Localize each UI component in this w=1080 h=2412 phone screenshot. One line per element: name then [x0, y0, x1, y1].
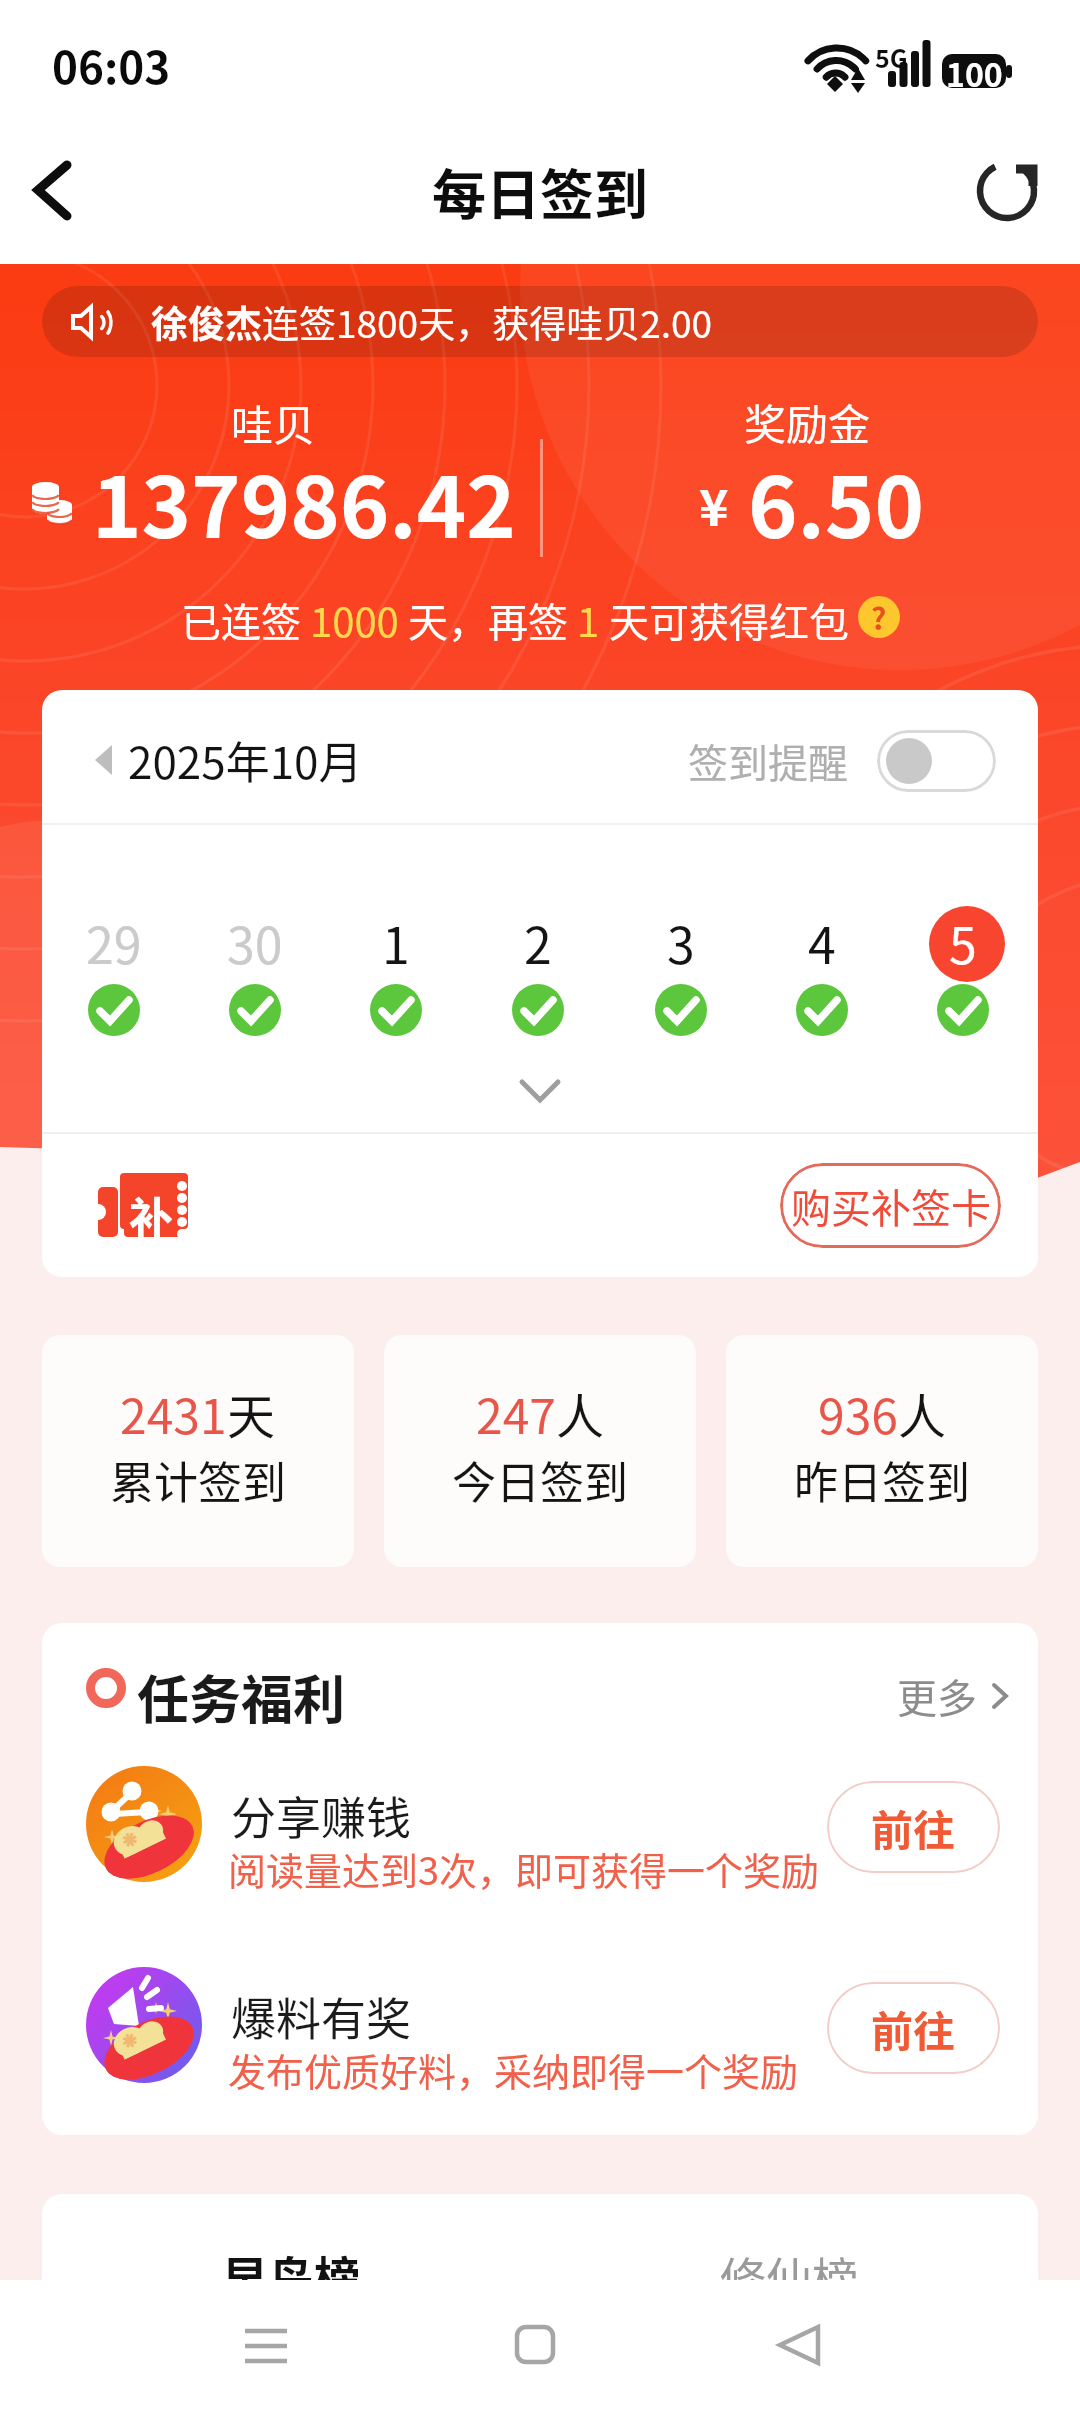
staticText: 连签1800天，获得哇贝2.00	[262, 295, 713, 349]
staticText: 早鸟榜	[222, 2242, 360, 2309]
button[interactable]: 29	[59, 880, 169, 1040]
staticText: 今日签到	[452, 1448, 628, 1512]
staticText: 06:03	[52, 33, 171, 97]
button[interactable]: Refresh	[971, 155, 1043, 227]
button[interactable]: 前往	[827, 1982, 1000, 2074]
button[interactable]: 4	[767, 880, 877, 1040]
button[interactable]: 936	[726, 1335, 1038, 1567]
staticText: 分享赚钱	[231, 1783, 412, 1848]
staticText: 累计签到	[110, 1448, 286, 1512]
staticText: 天可获得红包	[600, 591, 858, 643]
button[interactable]: 30	[200, 880, 310, 1040]
staticText: 修仙榜	[720, 2243, 858, 2310]
staticText: 1	[382, 906, 410, 978]
staticText: 昨日签到	[794, 1448, 970, 1512]
button[interactable]: Expand calendar	[511, 1061, 569, 1119]
staticText: 5G	[875, 39, 908, 75]
button[interactable]: Back	[765, 2310, 835, 2380]
button[interactable]: 早鸟榜	[222, 2242, 360, 2309]
staticText: 2025年10月	[128, 728, 363, 792]
staticText: 任务福利	[137, 1659, 346, 1734]
staticText: 补	[129, 1184, 173, 1248]
button[interactable]: 1	[341, 880, 451, 1040]
staticText: 爆料有奖	[231, 1984, 412, 2049]
staticText: 签到提醒	[688, 732, 848, 790]
staticText: 1	[577, 591, 600, 643]
button[interactable]: 分享赚钱	[42, 1765, 1038, 1887]
staticText: 3	[667, 906, 695, 978]
staticText: 阅读量达到3次，即可获得一个奖励	[228, 1841, 820, 1896]
button[interactable]: 前往	[827, 1781, 1000, 1873]
button[interactable]: 247	[384, 1335, 696, 1567]
button[interactable]: 更多	[897, 1667, 1013, 1725]
staticText: 购买补签卡	[791, 1177, 991, 1235]
button[interactable]: 修仙榜	[720, 2243, 858, 2310]
staticText: 更多	[897, 1667, 977, 1725]
staticText: 30	[227, 906, 283, 978]
button[interactable]: Home	[500, 2310, 570, 2380]
staticText: 前往	[871, 1797, 956, 1858]
button[interactable]: 2025年10月	[92, 728, 363, 792]
button[interactable]: Makeup card	[98, 1173, 192, 1239]
staticText: 发布优质好料，采纳即得一个奖励	[228, 2042, 799, 2097]
staticText: ?	[871, 596, 887, 637]
staticText: 2431	[120, 1378, 227, 1448]
button[interactable]: 签到提醒	[688, 730, 996, 792]
staticText: 徐俊杰	[151, 295, 262, 349]
staticText: 936	[818, 1378, 898, 1448]
staticText: 奖励金	[744, 391, 871, 452]
button[interactable]: 2431	[42, 1335, 354, 1567]
button[interactable]: 购买补签卡	[780, 1163, 1001, 1248]
button[interactable]: Recents	[229, 2315, 303, 2377]
staticText: 人	[898, 1378, 947, 1448]
staticText: 29	[86, 906, 142, 978]
staticText: 哇贝	[231, 392, 316, 453]
staticText: 已连签	[181, 591, 310, 643]
staticText: 4	[808, 906, 836, 978]
staticText: 137986.42	[92, 441, 516, 563]
staticText: ¥	[699, 468, 729, 540]
staticText: 天，再签	[399, 591, 577, 643]
staticText: 前往	[871, 1998, 956, 2059]
button[interactable]: Reminder toggle	[877, 730, 996, 792]
staticText: 1000	[310, 591, 399, 643]
staticText: 2	[524, 906, 552, 978]
button[interactable]: Help	[858, 596, 900, 638]
staticText: 100	[946, 50, 1003, 96]
staticText: 每日签到	[432, 152, 648, 230]
staticText: 人	[556, 1378, 605, 1448]
button[interactable]: 爆料有奖	[42, 1966, 1038, 2088]
staticText: 6.50	[748, 441, 924, 563]
staticText: 天	[227, 1378, 276, 1448]
staticText: 247	[476, 1378, 556, 1448]
button[interactable]: Back	[0, 132, 100, 242]
button[interactable]: 2	[483, 880, 593, 1040]
button[interactable]: 3	[626, 880, 736, 1040]
button[interactable]: 5	[908, 880, 1018, 1040]
button[interactable]: 徐俊杰	[42, 286, 1038, 357]
staticText: 5	[949, 906, 977, 978]
